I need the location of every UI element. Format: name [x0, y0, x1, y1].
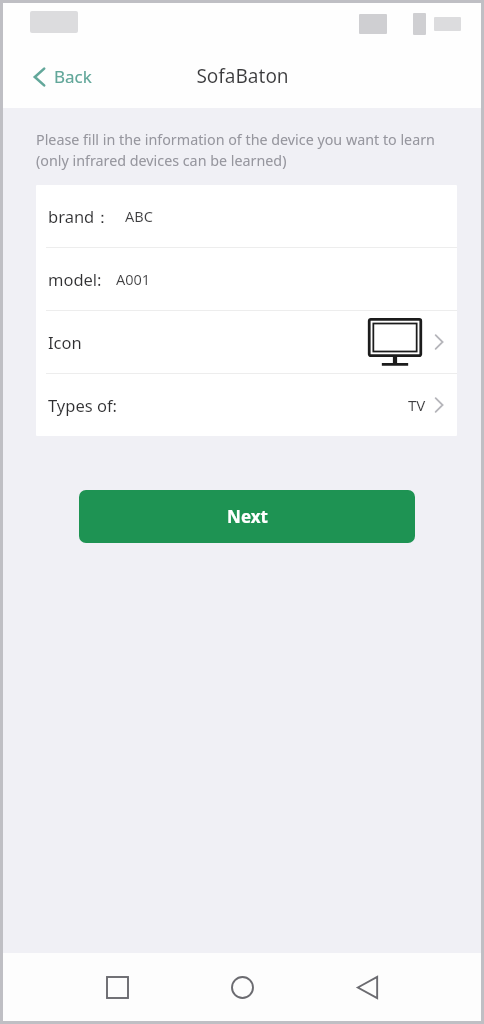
staticText: model:	[48, 268, 102, 290]
staticText: ABC	[125, 206, 153, 226]
button[interactable]: Types of:	[36, 374, 457, 436]
staticText: Back	[54, 65, 92, 88]
button[interactable]: brand：	[36, 185, 457, 247]
button[interactable]: Next	[79, 490, 415, 543]
staticText: A001	[116, 269, 151, 289]
button[interactable]: Home	[216, 961, 268, 1013]
button[interactable]: Icon	[36, 311, 457, 373]
staticText: Please fill in the information of the de…	[36, 130, 435, 170]
other: TV device icon	[367, 317, 423, 367]
staticText: brand：	[48, 205, 111, 228]
button[interactable]: Recent apps	[91, 961, 143, 1013]
staticText: Next	[227, 505, 268, 528]
staticText: TV	[408, 395, 426, 415]
staticText: SofaBaton	[196, 63, 289, 89]
staticText: Icon	[48, 331, 82, 353]
button[interactable]: Back	[341, 961, 393, 1013]
staticText: Types of:	[48, 394, 117, 416]
button[interactable]: model:	[36, 248, 457, 310]
button[interactable]: Back	[3, 55, 108, 98]
